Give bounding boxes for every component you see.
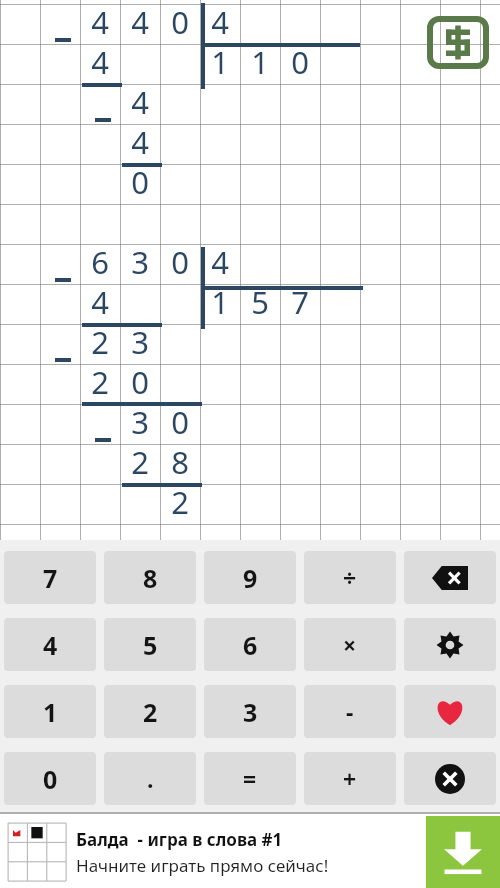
- staticText: 9: [243, 561, 258, 595]
- staticText: 2: [131, 441, 149, 481]
- staticText: Начните играть прямо сейчас!: [76, 854, 329, 877]
- staticText: 2: [143, 695, 158, 729]
- staticText: 3: [131, 241, 149, 281]
- button[interactable]: Балда - игра в слова #1: [0, 812, 500, 888]
- staticText: 3: [243, 695, 258, 729]
- button[interactable]: 6: [204, 618, 296, 671]
- staticText: 2: [171, 481, 189, 521]
- staticText: 4: [91, 1, 109, 41]
- staticText: 5: [143, 628, 158, 662]
- button[interactable]: 2: [104, 685, 196, 738]
- staticText: 0: [171, 401, 189, 441]
- staticText: 4: [131, 121, 149, 161]
- staticText: 1: [211, 41, 229, 81]
- button[interactable]: 9: [204, 551, 296, 604]
- button[interactable]: 8: [104, 551, 196, 604]
- button[interactable]: .: [104, 752, 196, 805]
- staticText: ÷: [343, 562, 357, 593]
- staticText: 4: [131, 81, 149, 121]
- staticText: 4: [43, 628, 58, 662]
- button[interactable]: Favorite: [404, 685, 496, 738]
- staticText: Балда - игра в слова #1: [76, 828, 283, 851]
- button[interactable]: ×: [304, 618, 396, 671]
- staticText: 4: [211, 1, 229, 41]
- staticText: 4: [91, 41, 109, 81]
- staticText: 4: [91, 281, 109, 321]
- staticText: 8: [171, 441, 189, 481]
- staticText: 1: [211, 281, 229, 321]
- staticText: 0: [43, 762, 58, 796]
- staticText: 0: [171, 1, 189, 41]
- button[interactable]: -: [304, 685, 396, 738]
- button[interactable]: 1: [4, 685, 96, 738]
- staticText: 0: [131, 361, 149, 401]
- staticText: 6: [243, 628, 258, 662]
- staticText: 2: [91, 321, 109, 361]
- staticText: 0: [291, 41, 309, 81]
- button[interactable]: +: [304, 752, 396, 805]
- button[interactable]: 7: [4, 551, 96, 604]
- staticText: 1: [251, 41, 269, 81]
- staticText: .: [147, 763, 154, 794]
- button[interactable]: Backspace: [404, 551, 496, 604]
- staticText: 6: [91, 241, 109, 281]
- button[interactable]: ÷: [304, 551, 396, 604]
- button[interactable]: 5: [104, 618, 196, 671]
- staticText: 1: [43, 695, 58, 729]
- button[interactable]: 0: [4, 752, 96, 805]
- staticText: 3: [131, 321, 149, 361]
- staticText: ×: [343, 629, 357, 660]
- button[interactable]: Install: [426, 816, 500, 888]
- button[interactable]: Settings: [404, 618, 496, 671]
- button[interactable]: Remove ads / purchase: [427, 16, 489, 69]
- staticText: +: [343, 763, 357, 794]
- staticText: 0: [131, 161, 149, 201]
- staticText: 8: [143, 561, 158, 595]
- staticText: 7: [291, 281, 309, 321]
- staticText: =: [243, 763, 257, 794]
- staticText: 3: [131, 401, 149, 441]
- button[interactable]: 4: [4, 618, 96, 671]
- staticText: 0: [171, 241, 189, 281]
- staticText: 2: [91, 361, 109, 401]
- staticText: 7: [43, 561, 58, 595]
- staticText: -: [346, 696, 354, 727]
- staticText: 4: [131, 1, 149, 41]
- button[interactable]: Close: [404, 752, 496, 805]
- button[interactable]: 3: [204, 685, 296, 738]
- staticText: 4: [211, 241, 229, 281]
- button[interactable]: =: [204, 752, 296, 805]
- staticText: 5: [251, 281, 269, 321]
